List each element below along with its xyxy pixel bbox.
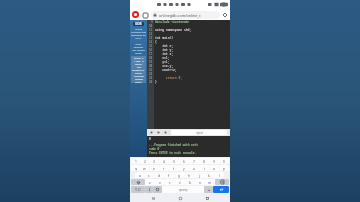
button[interactable]: i	[199, 165, 209, 171]
button[interactable]: Bookmark	[222, 12, 228, 18]
button[interactable]: Terms	[131, 62, 146, 65]
button[interactable]: Share	[131, 80, 146, 83]
button[interactable]: u	[189, 165, 199, 171]
button[interactable]: Enter	[213, 186, 229, 193]
staticText: 5	[173, 159, 175, 163]
button[interactable]: 1	[131, 158, 140, 164]
button[interactable]: ?123	[131, 186, 145, 193]
button[interactable]: Settings	[163, 130, 168, 135]
button[interactable]: +GDB	[131, 71, 146, 74]
button[interactable]: Home	[176, 194, 184, 202]
staticText: Terms	[135, 62, 142, 65]
button[interactable]: Shift	[131, 179, 145, 185]
button[interactable]: h	[184, 172, 194, 178]
staticText: share	[130, 51, 147, 54]
staticText: input	[196, 131, 203, 135]
button[interactable]: q	[131, 165, 140, 171]
staticText: 11	[149, 28, 153, 32]
staticText: 1	[135, 159, 137, 163]
button[interactable]: w	[140, 165, 149, 171]
button[interactable]: t	[169, 165, 179, 171]
staticText: 9	[151, 20, 153, 24]
button[interactable]: 0	[219, 158, 229, 164]
staticText: +GDB	[135, 71, 142, 74]
button[interactable]: 9	[209, 158, 219, 164]
button[interactable]: n	[195, 179, 205, 185]
staticText: int z;	[155, 52, 174, 56]
button[interactable]: onlinegdb.com/online_c	[151, 11, 220, 19]
staticText: + Sbg C	[134, 59, 144, 62]
staticText: Share	[135, 80, 142, 83]
staticText: b	[189, 180, 191, 184]
button[interactable]: m	[205, 179, 215, 185]
staticText: using namespace std;	[155, 28, 192, 32]
staticText: Get	[137, 65, 141, 68]
button[interactable]: e	[149, 165, 159, 171]
staticText: t	[173, 166, 175, 170]
staticText: 15	[149, 44, 153, 48]
button[interactable]: v	[175, 179, 185, 185]
button[interactable]: b	[185, 179, 195, 185]
button[interactable]: 8	[199, 158, 209, 164]
button[interactable]: f	[164, 172, 174, 178]
button[interactable]: k	[204, 172, 214, 178]
staticText: n	[199, 180, 201, 184]
staticText: 22	[149, 72, 153, 76]
button[interactable]: x	[155, 179, 165, 185]
button[interactable]: y	[179, 165, 189, 171]
button[interactable]: p	[219, 165, 229, 171]
button[interactable]: l	[214, 172, 224, 178]
button[interactable]: Credits	[131, 77, 146, 80]
button[interactable]: Tabs	[142, 12, 148, 18]
button[interactable]: Recents	[149, 194, 157, 202]
staticText: 14	[149, 40, 153, 44]
staticText: a	[139, 173, 141, 177]
staticText: y	[183, 166, 185, 170]
button[interactable]: + Sbg C	[131, 59, 146, 62]
button[interactable]: Get	[131, 65, 146, 68]
button[interactable]: 5	[169, 158, 179, 164]
staticText: Tutorials	[134, 74, 144, 77]
button[interactable]: 2	[140, 158, 149, 164]
button[interactable]: about ⌄	[131, 56, 146, 59]
staticText: 2	[144, 159, 146, 163]
button[interactable]: qwerty	[162, 186, 204, 193]
button[interactable]: 6	[179, 158, 189, 164]
button[interactable]: Emoji	[153, 186, 162, 193]
button[interactable]: d	[154, 172, 164, 178]
button[interactable]: GDB	[133, 22, 144, 26]
staticText: 4	[163, 159, 165, 163]
button[interactable]: c	[165, 179, 175, 185]
button[interactable]: g	[174, 172, 184, 178]
button[interactable]: z	[145, 179, 155, 185]
staticText: Credits	[135, 77, 143, 80]
button[interactable]: Browser menu	[132, 11, 139, 18]
button[interactable]: 7	[189, 158, 199, 164]
button[interactable]: o	[209, 165, 219, 171]
staticText: f	[168, 173, 170, 177]
staticText: code.	[130, 42, 147, 45]
button[interactable]: s	[144, 172, 154, 178]
button[interactable]: Comma	[145, 186, 153, 193]
staticText: int x;	[155, 44, 174, 48]
button[interactable]: input	[171, 130, 227, 135]
staticText: compiler and	[130, 30, 147, 33]
button[interactable]: 4	[159, 158, 169, 164]
staticText: 0	[149, 137, 151, 141]
staticText: q	[135, 166, 137, 170]
button[interactable]: j	[194, 172, 204, 178]
button[interactable]: Run	[149, 130, 154, 135]
button[interactable]: Back	[203, 194, 211, 202]
staticText: GDB	[135, 22, 142, 26]
button[interactable]: r	[159, 165, 169, 171]
staticText: 8	[203, 159, 205, 163]
staticText: r	[163, 166, 165, 170]
button[interactable]: Stop	[156, 130, 161, 135]
button[interactable]: Tutorials	[131, 74, 146, 77]
staticText: 7	[193, 159, 195, 163]
button[interactable]: Backspace	[215, 179, 229, 185]
button[interactable]: Period	[204, 186, 213, 193]
button[interactable]: Contact Us	[131, 68, 146, 71]
button[interactable]: 3	[149, 158, 159, 164]
button[interactable]: a	[135, 172, 144, 178]
